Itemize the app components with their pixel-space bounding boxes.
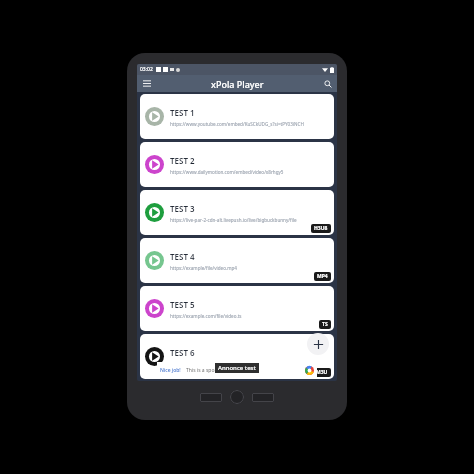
button[interactable]: TEST 1 [140,94,334,139]
staticText: TS [322,321,328,328]
button[interactable]: Add [307,333,329,355]
staticText: https://example.com/file/video.ts [170,313,242,319]
button[interactable]: Home [230,390,244,404]
staticText: Nice job! [160,367,181,374]
staticText: H3U8 [314,225,328,232]
staticText: https://example/file/video.mp4 [170,265,237,271]
button[interactable]: TEST 6 [140,334,334,379]
staticText: https://example.com/file/test.m3u [170,361,244,367]
staticText: Annonce test [218,364,256,372]
staticText: M3U [316,369,328,376]
button[interactable]: TEST 5 [140,286,334,331]
button[interactable]: Recents [200,393,222,402]
staticText: This is a sponsored test ad. [186,367,250,374]
button[interactable]: TEST 4 [140,238,334,283]
button[interactable]: TEST 2 [140,142,334,187]
staticText: TEST 5 [170,299,195,310]
staticText: https://live-par-2-cdn-alt.livepush.io/l… [170,217,297,223]
staticText: https://www.dailymotion.com/embed/video/… [170,169,284,175]
staticText: 03:02 [140,66,153,73]
staticText: TEST 3 [170,203,195,214]
button[interactable]: Nice job! [157,362,317,379]
button[interactable]: Search [321,77,334,90]
staticText: xPola Player [211,78,264,90]
button[interactable]: Back [252,393,274,402]
staticText: MP4 [317,273,328,280]
staticText: TEST 1 [170,107,195,118]
staticText: TEST 4 [170,251,195,262]
staticText: https://www.youtube.com/embed/KuSCkUDG_s… [170,121,304,127]
button[interactable]: TEST 3 [140,190,334,235]
staticText: TEST 2 [170,155,195,166]
button[interactable]: Open navigation menu [140,77,153,90]
staticText: TEST 6 [170,347,195,358]
